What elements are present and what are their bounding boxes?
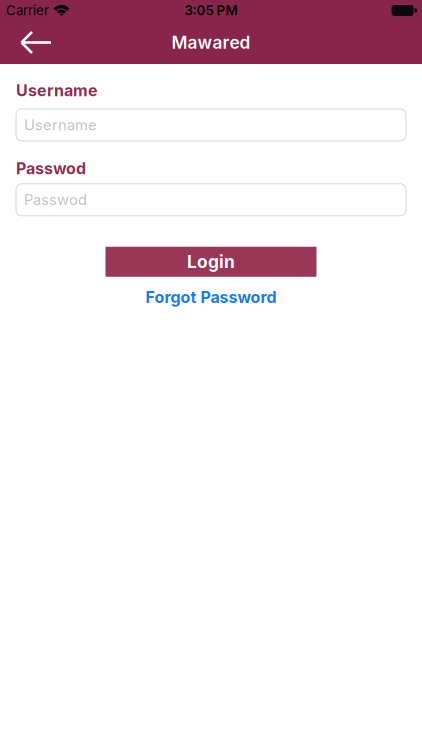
staticText: Mawared <box>171 32 250 53</box>
button[interactable]: Login <box>105 247 316 277</box>
staticText: Login <box>187 251 235 272</box>
button[interactable]: Back <box>0 21 52 64</box>
staticText: Username <box>24 116 97 133</box>
staticText: Username <box>16 81 98 100</box>
staticText: 3:05 PM <box>184 3 237 18</box>
staticText: Carrier <box>6 3 49 18</box>
staticText: Forgot Password <box>145 288 276 307</box>
staticText: Passwod <box>16 159 86 178</box>
button[interactable]: Forgot Password <box>145 288 276 307</box>
staticText: Passwod <box>24 191 87 208</box>
